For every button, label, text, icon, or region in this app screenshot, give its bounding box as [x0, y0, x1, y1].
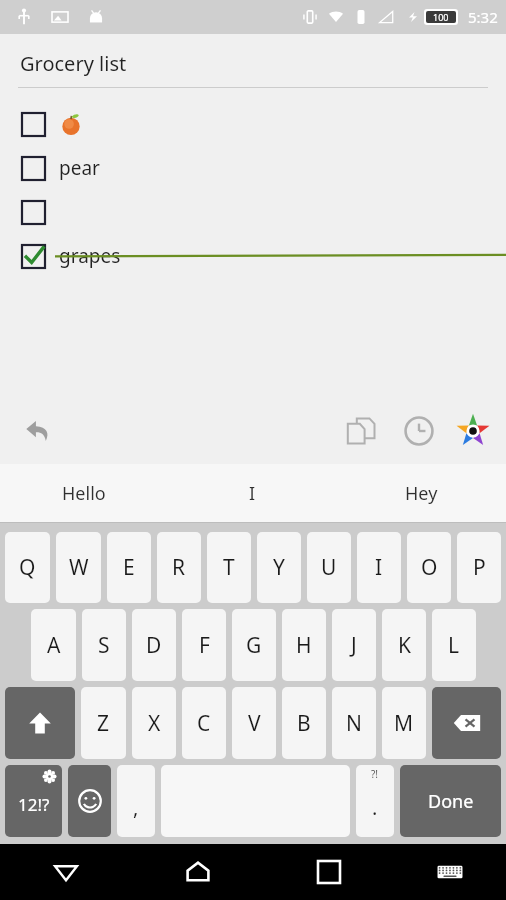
button[interactable]: Hey	[337, 464, 506, 522]
button[interactable]: History	[396, 408, 442, 454]
button[interactable]: W	[56, 532, 101, 603]
button[interactable]: 12!?	[5, 765, 62, 837]
staticText: Hey	[405, 481, 438, 506]
button[interactable]: Y	[257, 532, 301, 603]
staticText: L	[448, 631, 460, 660]
button[interactable]: Unchecked item	[0, 146, 506, 190]
staticText: B	[297, 709, 311, 738]
staticText: D	[146, 631, 162, 660]
staticText: .	[372, 794, 378, 821]
staticText: 100	[433, 11, 449, 23]
staticText: C	[197, 709, 211, 738]
staticText: P	[473, 553, 486, 582]
staticText: I	[375, 553, 383, 582]
button[interactable]: Unchecked item	[22, 201, 45, 224]
staticText: S	[98, 631, 110, 660]
staticText: O	[421, 553, 438, 582]
button[interactable]: S	[82, 609, 126, 681]
button[interactable]: X	[132, 687, 176, 759]
staticText: Hello	[62, 481, 106, 506]
staticText: N	[346, 709, 362, 738]
button[interactable]: Hide keyboard	[0, 844, 132, 900]
button[interactable]: A	[31, 609, 76, 681]
button[interactable]: Z	[81, 687, 126, 759]
button[interactable]: U	[307, 532, 351, 603]
button[interactable]: R	[157, 532, 201, 603]
button[interactable]: .	[356, 765, 394, 837]
staticText: K	[398, 631, 411, 660]
staticText: Z	[97, 709, 110, 738]
staticText: V	[248, 709, 261, 738]
staticText: ?!	[371, 767, 379, 781]
staticText: R	[172, 553, 186, 582]
button[interactable]: Recent apps	[263, 844, 394, 900]
button[interactable]: B	[282, 687, 326, 759]
staticText: ,	[133, 794, 139, 821]
staticText: Grocery list	[20, 50, 127, 77]
button[interactable]: Copy	[338, 408, 384, 454]
button[interactable]: Backspace	[432, 687, 501, 759]
staticText: F	[199, 631, 210, 660]
button[interactable]: H	[282, 609, 326, 681]
button[interactable]: C	[182, 687, 226, 759]
button[interactable]: Emoji	[68, 765, 111, 837]
staticText: G	[246, 631, 262, 660]
button[interactable]: K	[382, 609, 426, 681]
staticText: A	[47, 631, 61, 660]
staticText: W	[69, 553, 89, 582]
button[interactable]: L	[432, 609, 476, 681]
staticText: Y	[273, 553, 285, 582]
button[interactable]: G	[232, 609, 276, 681]
staticText: 5:32	[468, 7, 498, 27]
staticText: T	[223, 553, 235, 582]
button[interactable]: T	[207, 532, 251, 603]
staticText: J	[351, 631, 357, 660]
staticText: M	[394, 709, 414, 738]
staticText: grapes	[59, 243, 121, 269]
button[interactable]: Unchecked item	[22, 157, 45, 180]
button[interactable]: Shift	[5, 687, 75, 759]
button[interactable]: Undo	[18, 411, 58, 451]
button[interactable]: Home	[132, 844, 263, 900]
button[interactable]: O	[407, 532, 451, 603]
staticText: U	[321, 553, 337, 582]
staticText: I	[249, 481, 256, 506]
staticText: pear	[59, 155, 100, 181]
button[interactable]: Stickers	[450, 408, 496, 454]
button[interactable]: ,	[117, 765, 155, 837]
button[interactable]: M	[382, 687, 426, 759]
button[interactable]: D	[132, 609, 176, 681]
staticText: 12!?	[18, 793, 50, 816]
button[interactable]: J	[332, 609, 376, 681]
button[interactable]: I	[168, 464, 337, 522]
button[interactable]: Switch keyboard	[394, 844, 506, 900]
button[interactable]: N	[332, 687, 376, 759]
button[interactable]: V	[232, 687, 276, 759]
staticText: Done	[428, 789, 474, 814]
button[interactable]: Hello	[0, 464, 168, 522]
staticText: E	[123, 553, 135, 582]
staticText: Q	[19, 553, 36, 582]
button[interactable]: F	[182, 609, 226, 681]
button[interactable]: Unchecked item	[0, 190, 506, 234]
button[interactable]: I	[357, 532, 401, 603]
button[interactable]: P	[457, 532, 501, 603]
button[interactable]: Unchecked item	[0, 102, 506, 146]
staticText: H	[296, 631, 312, 660]
button[interactable]: Checked item	[0, 234, 506, 278]
staticText: X	[148, 709, 161, 738]
button[interactable]: Done	[400, 765, 501, 837]
button[interactable]: E	[107, 532, 151, 603]
button[interactable]: Q	[5, 532, 50, 603]
button[interactable]: Checked item	[22, 245, 45, 268]
button[interactable]: Unchecked item	[22, 113, 45, 136]
